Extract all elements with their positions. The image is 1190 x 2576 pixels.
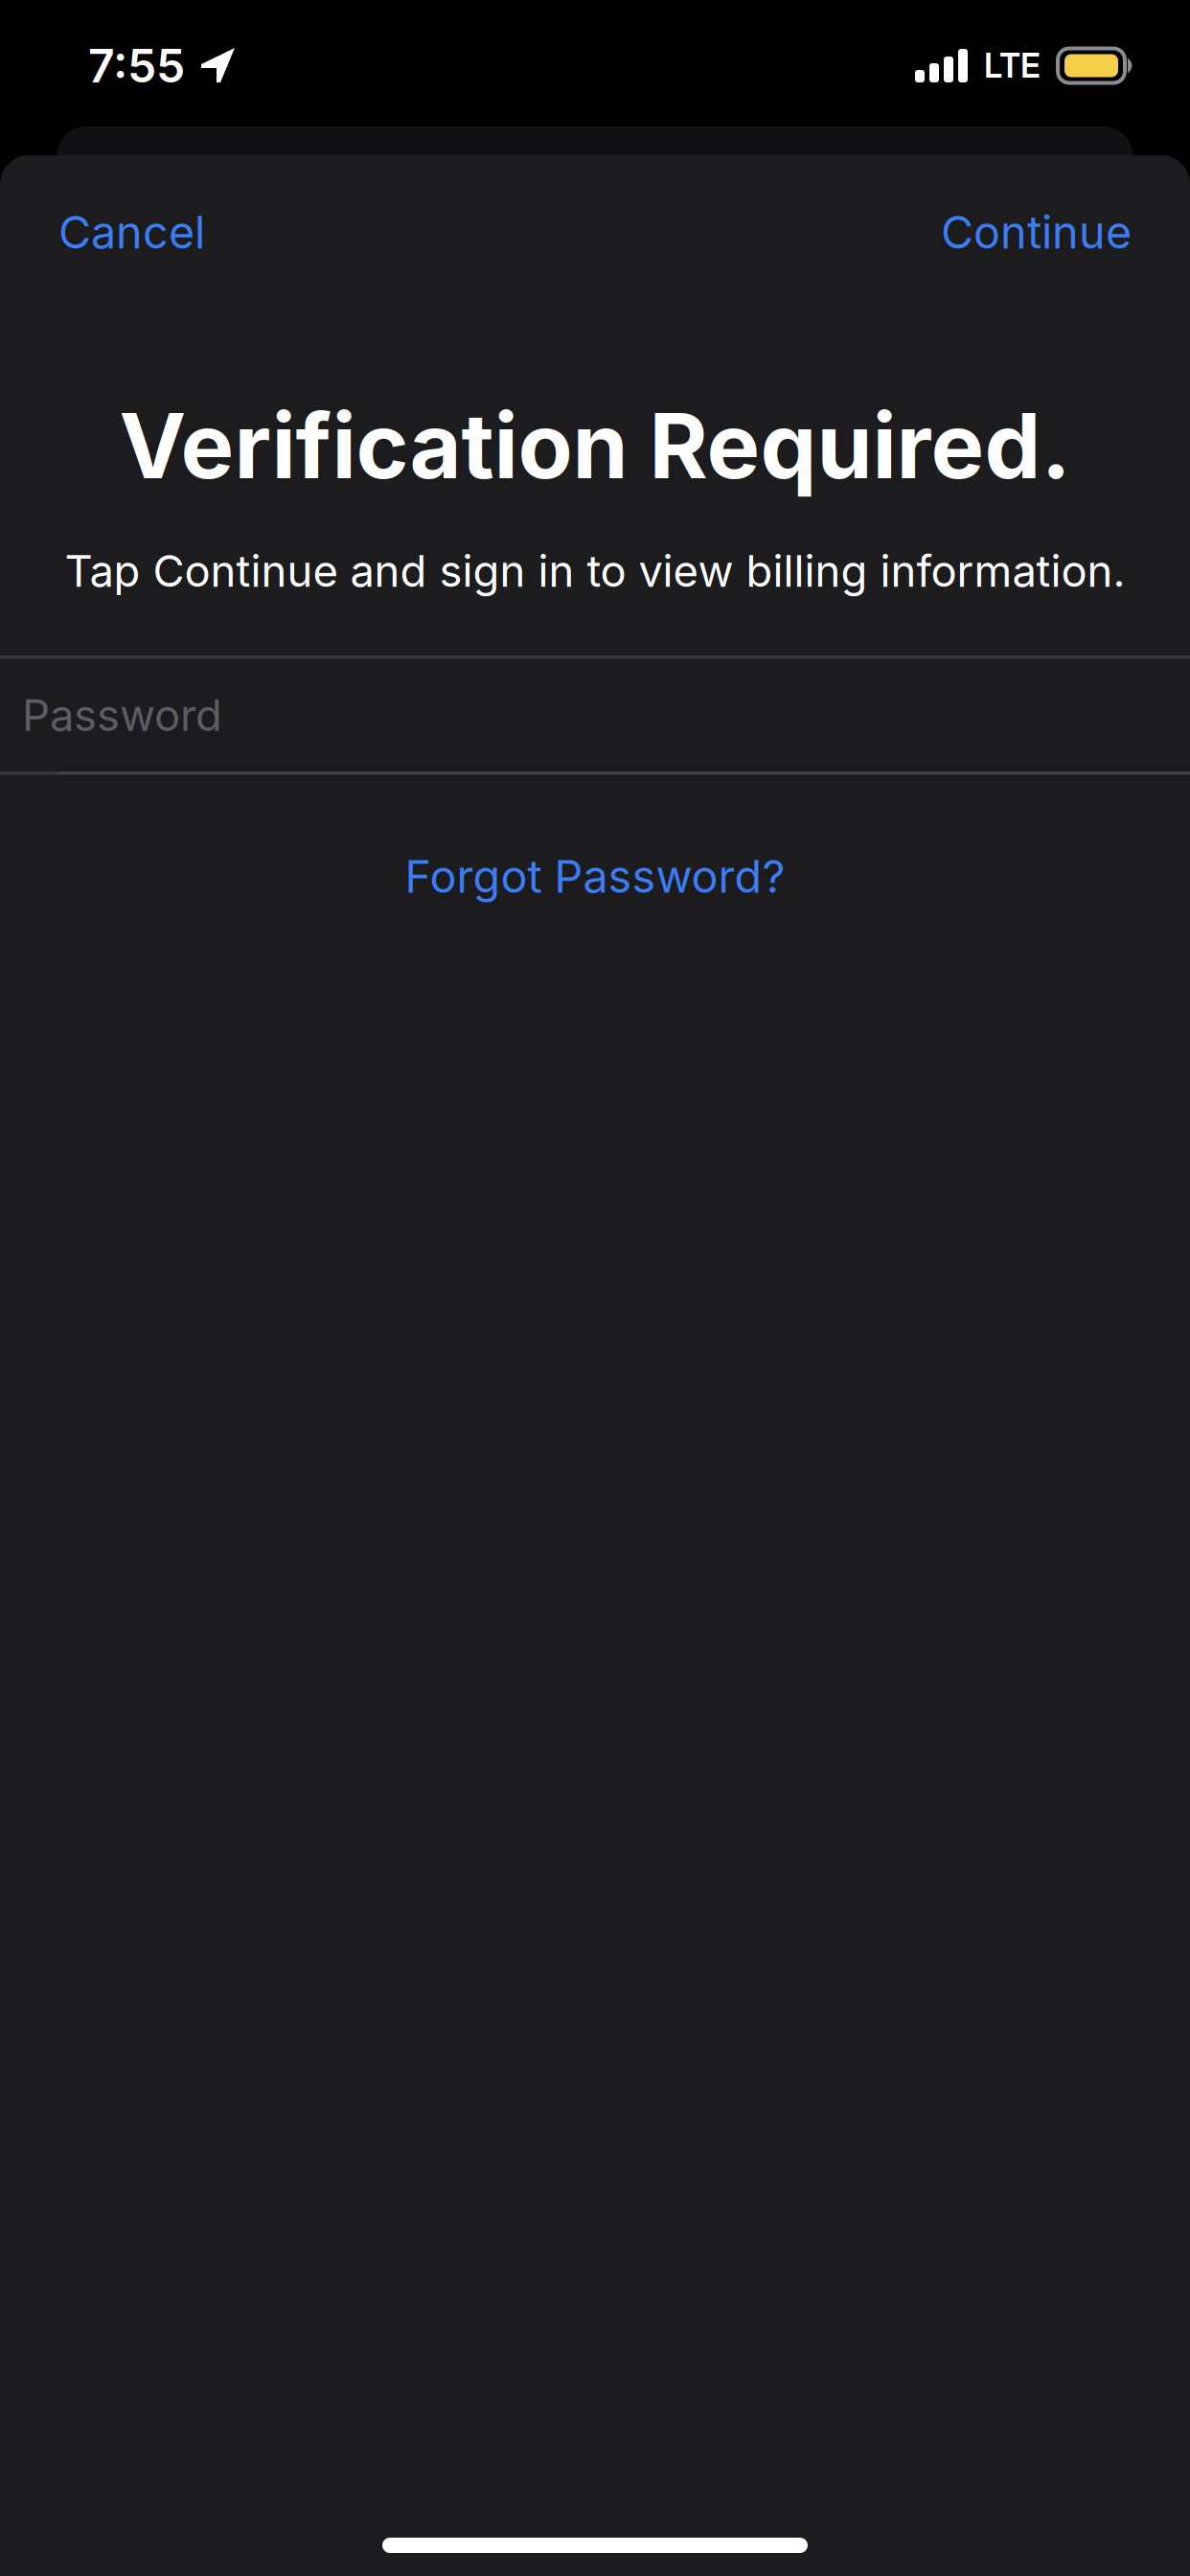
button[interactable]: Password xyxy=(0,659,1190,772)
staticText: Forgot Password? xyxy=(405,849,785,903)
staticText: 7:55 xyxy=(88,38,185,94)
staticText: LTE xyxy=(984,46,1041,86)
button[interactable]: Cancel xyxy=(37,180,226,284)
button[interactable]: Forgot Password? xyxy=(366,830,824,923)
staticText: Password xyxy=(22,689,222,741)
staticText: Cancel xyxy=(58,205,205,259)
staticText: Continue xyxy=(941,205,1132,259)
staticText: Tap Continue and sign in to view billing… xyxy=(65,545,1125,597)
button[interactable]: Continue xyxy=(920,180,1153,284)
staticText: Verification Required. xyxy=(119,391,1071,500)
